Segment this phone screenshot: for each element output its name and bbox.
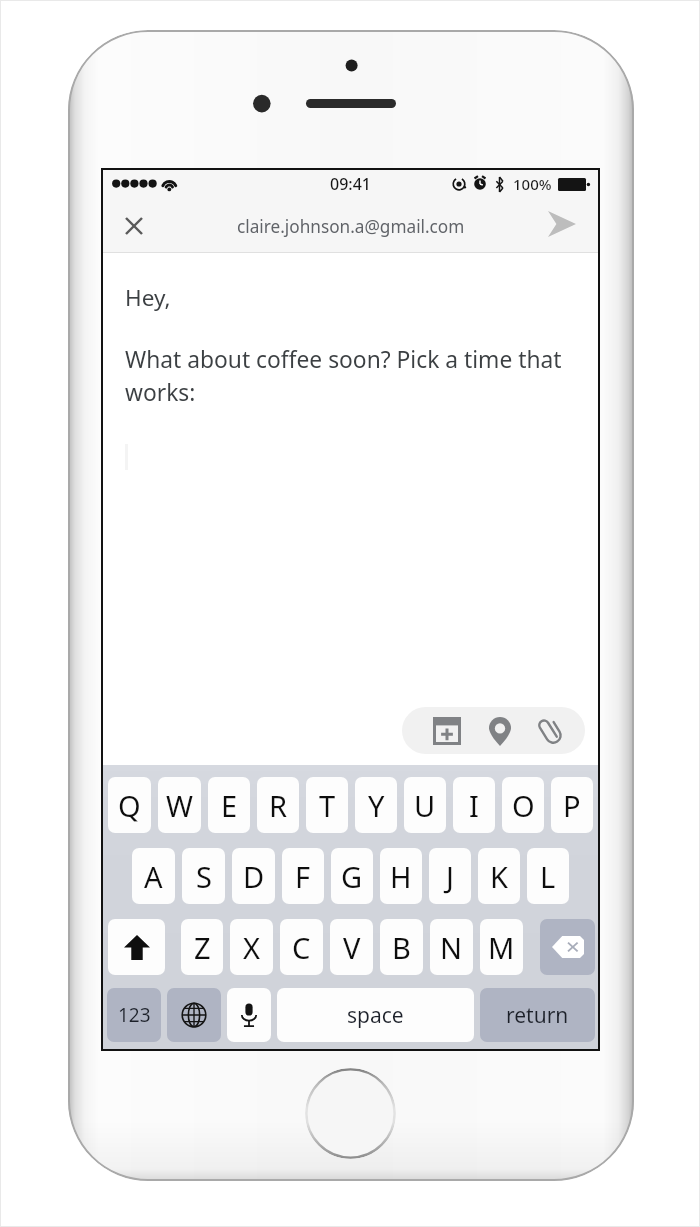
button[interactable]: G [331,848,373,904]
button[interactable]: Close [116,208,152,244]
staticText: C [292,928,311,967]
button[interactable]: L [527,848,569,904]
staticText: T [319,786,336,825]
button[interactable]: U [404,777,446,833]
button[interactable]: F [282,848,324,904]
button[interactable]: space [277,988,474,1042]
button[interactable]: I [453,777,495,833]
button[interactable]: O [502,777,544,833]
staticText: space [347,1001,404,1030]
button[interactable]: M [480,919,523,975]
staticText: S [196,857,212,896]
staticText: Z [194,928,211,967]
staticText: O [512,786,535,825]
button[interactable]: H [380,848,422,904]
button[interactable]: C [280,919,323,975]
staticText: L [540,857,556,896]
staticText: 123 [118,1002,151,1028]
button[interactable]: Insert time [431,715,463,747]
staticText: V [343,928,361,967]
button[interactable]: Shift [108,919,165,975]
button[interactable]: Insert location [485,716,515,746]
button[interactable]: N [430,919,473,975]
staticText: 09:41 [330,173,371,195]
staticText: U [414,786,436,825]
button[interactable]: P [551,777,593,833]
staticText: E [221,786,238,825]
staticText: 100% [513,174,552,194]
button[interactable]: X [230,919,273,975]
staticText: Q [118,786,141,825]
button[interactable]: Attach file [534,715,566,747]
staticText: N [440,928,463,967]
staticText: Y [368,786,385,825]
staticText: A [144,857,163,896]
button[interactable]: E [208,777,250,833]
staticText: K [490,857,508,896]
staticText: claire.johnson.a@gmail.com [237,215,465,238]
button[interactable]: 123 [107,988,161,1042]
staticText: J [446,857,454,896]
button[interactable]: return [480,988,595,1042]
staticText: W [166,786,193,825]
button[interactable]: Change keyboard [167,988,221,1042]
button[interactable]: Home [305,1068,396,1159]
staticText: H [390,857,412,896]
staticText: D [243,857,265,896]
staticText: M [488,928,515,967]
button[interactable]: Backspace [540,919,595,975]
button[interactable]: J [429,848,471,904]
staticText: return [506,1001,569,1030]
staticText: I [469,786,479,825]
button[interactable]: D [232,848,275,904]
button[interactable]: K [478,848,520,904]
button[interactable]: Z [181,919,223,975]
button[interactable]: B [380,919,423,975]
staticText: R [269,786,288,825]
staticText: X [243,928,260,967]
staticText: B [392,928,411,967]
button[interactable]: Q [108,777,151,833]
staticText: Hey, [125,282,171,313]
staticText: G [341,857,363,896]
button[interactable]: V [330,919,373,975]
button[interactable]: S [182,848,225,904]
button[interactable]: Send [542,204,582,244]
button[interactable]: R [257,777,299,833]
staticText: P [563,786,581,825]
staticText: What about coffee soon? Pick a time that… [125,344,586,408]
button[interactable]: Y [355,777,397,833]
button[interactable]: W [158,777,201,833]
button[interactable]: Dictate [227,988,271,1042]
staticText: F [295,857,311,896]
button[interactable]: A [132,848,175,904]
button[interactable]: T [306,777,348,833]
